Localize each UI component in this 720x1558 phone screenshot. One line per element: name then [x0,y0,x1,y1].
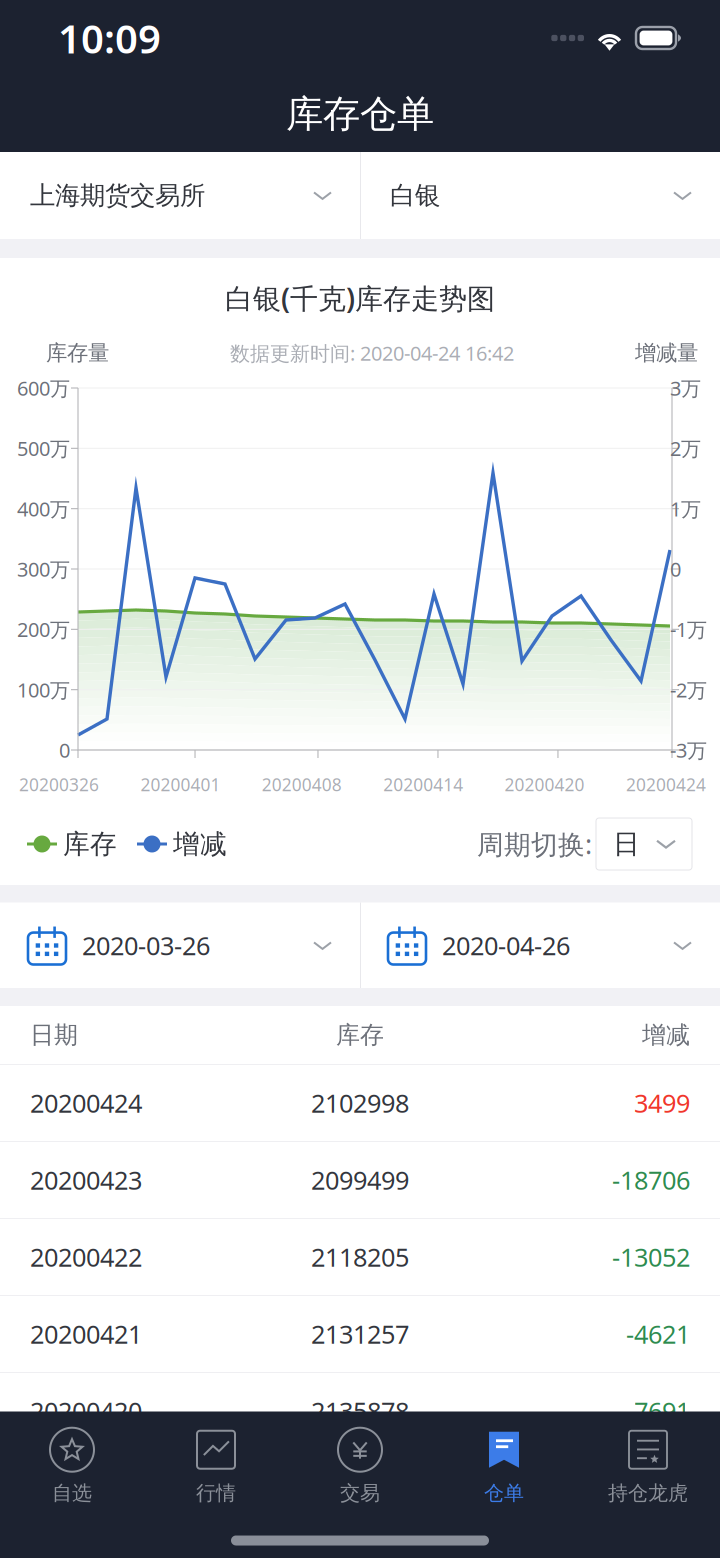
staticText: 7691 [634,1394,690,1428]
staticText: 10:09 [58,11,161,64]
staticText: 20200408 [262,773,342,796]
staticText: 自选 [52,1481,92,1505]
staticText: 库存 [63,828,117,860]
staticText: 20200421 [30,1317,142,1351]
staticText: 库存量 [46,340,109,366]
staticText: 库存 [336,1020,384,1050]
staticText: 20200401 [140,773,220,796]
button[interactable]: 2020-04-26 [360,902,720,988]
staticText: 增减量 [635,340,698,366]
staticText: -13052 [612,1240,690,1274]
staticText: 2020-03-26 [82,929,210,962]
staticText: 2万 [670,435,701,462]
staticText: 2131257 [311,1317,409,1351]
staticText: 2135878 [311,1394,409,1428]
staticText: 交易 [340,1481,380,1505]
button[interactable]: 持仓龙虎 [576,1411,720,1521]
staticText: 0 [670,556,681,582]
button[interactable]: 日 [596,818,692,870]
staticText: 白银 [390,180,440,211]
button[interactable]: 行情 [144,1411,288,1521]
staticText: 3499 [634,1086,690,1120]
button[interactable]: 2020-03-26 [0,902,360,988]
staticText: -1万 [670,616,707,643]
button[interactable]: 仓单 [432,1411,576,1521]
button[interactable]: 白银 [360,152,720,239]
staticText: 持仓龙虎 [608,1481,688,1505]
button[interactable]: 自选 [0,1411,144,1521]
staticText: 数据更新时间: 2020-04-24 16:42 [230,340,514,366]
staticText: 日 [613,828,640,860]
staticText: 20200420 [30,1394,142,1428]
staticText: 3万 [670,375,701,401]
staticText: 200万 [17,616,70,643]
staticText: 20200422 [30,1240,142,1274]
button[interactable]: 上海期货交易所 [0,152,360,239]
staticText: 20200414 [383,773,463,796]
staticText: -4621 [626,1317,690,1351]
staticText: 20200326 [19,773,99,796]
staticText: 400万 [17,495,70,522]
staticText: 白银(千克)库存走势图 [225,279,495,317]
staticText: 20200424 [30,1086,142,1120]
staticText: 仓单 [484,1481,524,1505]
staticText: -3万 [670,737,707,763]
staticText: 300万 [17,556,70,582]
staticText: 2020-04-26 [442,929,570,962]
staticText: 20200420 [505,773,585,796]
staticText: 20200423 [30,1163,142,1197]
staticText: 增减 [173,828,227,860]
staticText: 库存仓单 [286,91,434,137]
staticText: 500万 [17,435,70,462]
staticText: 行情 [196,1481,236,1505]
staticText: 2102998 [311,1086,409,1120]
staticText: 周期切换: [477,826,592,862]
staticText: 日期 [30,1020,78,1050]
button[interactable]: 交易 [288,1411,432,1521]
staticText: 600万 [17,375,70,401]
staticText: 2118205 [311,1240,409,1274]
staticText: 1万 [670,495,701,522]
staticText: 100万 [17,676,70,703]
staticText: 上海期货交易所 [30,180,205,211]
staticText: 增减 [642,1020,690,1050]
staticText: -18706 [612,1163,690,1197]
staticText: 2099499 [311,1163,409,1197]
staticText: -2万 [670,676,707,703]
staticText: 20200424 [626,773,706,796]
staticText: 0 [59,737,70,763]
